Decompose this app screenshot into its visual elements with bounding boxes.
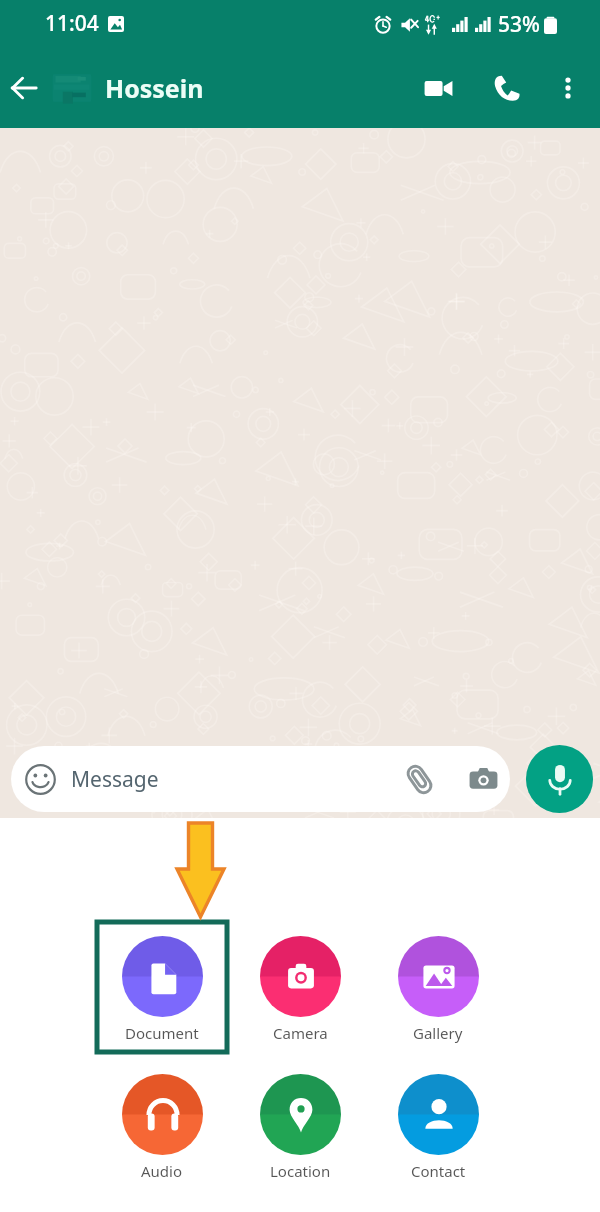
button[interactable]: Camera	[460, 756, 506, 802]
staticText: 11:04	[45, 9, 99, 38]
button[interactable]: Audio	[97, 1057, 227, 1193]
button[interactable]: Location	[235, 1057, 365, 1193]
button[interactable]: Attach	[396, 756, 442, 802]
button[interactable]: Camera	[235, 919, 365, 1055]
button[interactable]: Video call	[410, 60, 466, 116]
staticText: 53%	[498, 10, 540, 39]
staticText: Location	[270, 1161, 331, 1181]
staticText: Camera	[273, 1023, 328, 1043]
button[interactable]: Record voice message	[526, 745, 593, 813]
button[interactable]: Contact	[373, 1057, 503, 1193]
button[interactable]: More options	[540, 60, 596, 116]
button[interactable]: Emoji	[11, 746, 510, 812]
button[interactable]: Emoji	[19, 758, 61, 800]
button[interactable]: Voice call	[479, 60, 535, 116]
staticText: Contact	[411, 1161, 466, 1181]
staticText: Message	[71, 765, 159, 794]
button[interactable]: Contact photo	[49, 65, 95, 111]
staticText: Gallery	[413, 1023, 463, 1043]
button[interactable]: Gallery	[373, 919, 503, 1055]
button[interactable]: Hossein	[105, 71, 204, 105]
staticText: Document	[125, 1023, 199, 1043]
staticText: Audio	[141, 1161, 183, 1181]
button[interactable]: Document	[97, 919, 227, 1055]
button[interactable]: Back	[0, 48, 47, 128]
